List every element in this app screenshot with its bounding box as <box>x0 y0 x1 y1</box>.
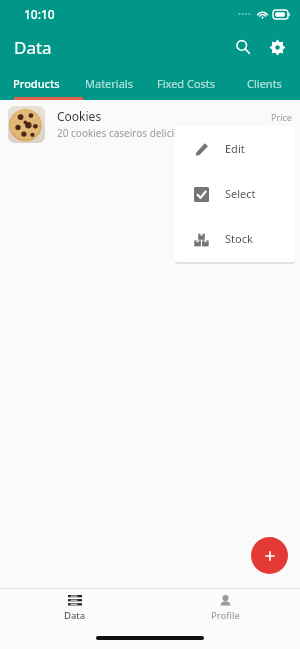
staticText: Data <box>64 609 86 622</box>
button[interactable]: Profile <box>150 589 300 627</box>
button[interactable]: Fixed Costs <box>145 66 228 100</box>
staticText: Data <box>14 36 52 59</box>
staticText: 10:10 <box>24 6 55 22</box>
staticText: Select <box>225 186 256 201</box>
button[interactable]: Search <box>226 30 260 64</box>
staticText: Clients <box>247 76 282 91</box>
staticText: Products <box>13 76 60 91</box>
staticText: Stock <box>225 231 253 246</box>
staticText: Price <box>271 111 292 123</box>
button[interactable]: Select <box>175 171 295 216</box>
staticText: Materials <box>85 76 133 91</box>
button[interactable]: Materials <box>73 66 145 100</box>
button[interactable]: Stock <box>175 216 295 261</box>
button[interactable]: Settings <box>260 30 294 64</box>
staticText: Edit <box>225 141 245 156</box>
button[interactable]: Clients <box>228 66 300 100</box>
staticText: Profile <box>211 609 240 622</box>
staticText: 20 cookies caseiros deliciosos <box>57 126 196 140</box>
button[interactable]: Cookies <box>0 100 300 148</box>
staticText: Cookies <box>57 108 102 124</box>
button[interactable]: Edit <box>175 126 295 171</box>
button[interactable]: Data <box>0 589 150 627</box>
button[interactable]: Products <box>0 66 73 100</box>
staticText: Fixed Costs <box>157 76 216 91</box>
button[interactable]: Add <box>251 537 288 574</box>
